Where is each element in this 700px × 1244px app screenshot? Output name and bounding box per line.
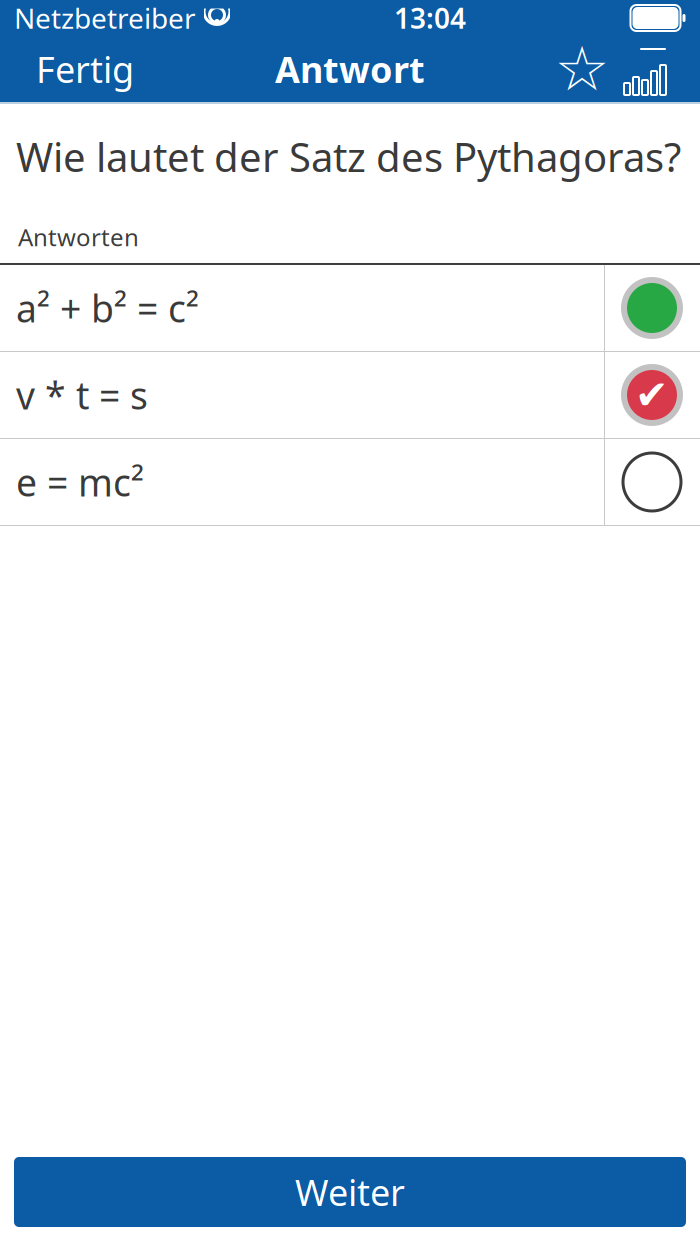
staticText: Antworten	[18, 221, 139, 253]
staticText: Netzbetreiber	[14, 0, 196, 37]
staticText: Fertig	[36, 45, 134, 93]
staticText: Wie lautet der Satz des Pythagoras?	[16, 130, 681, 183]
staticText: v * t = s	[16, 370, 148, 420]
button[interactable]: Fertig	[0, 37, 152, 101]
staticText: e = mc²	[16, 457, 144, 507]
button[interactable]: Favorit	[550, 37, 614, 101]
button[interactable]: Statistik	[614, 37, 676, 101]
staticText: a² + b² = c²	[16, 283, 199, 333]
button[interactable]: a² + b² = c²	[0, 265, 700, 351]
button[interactable]: e = mc²	[0, 439, 700, 525]
staticText: ✔	[635, 372, 669, 418]
staticText: 13:04	[394, 0, 466, 37]
button[interactable]: Weiter	[14, 1157, 686, 1227]
staticText: Antwort	[275, 45, 425, 93]
staticText: ☆	[554, 34, 609, 104]
staticText: Weiter	[295, 1168, 405, 1216]
button[interactable]: v * t = s	[0, 352, 700, 438]
